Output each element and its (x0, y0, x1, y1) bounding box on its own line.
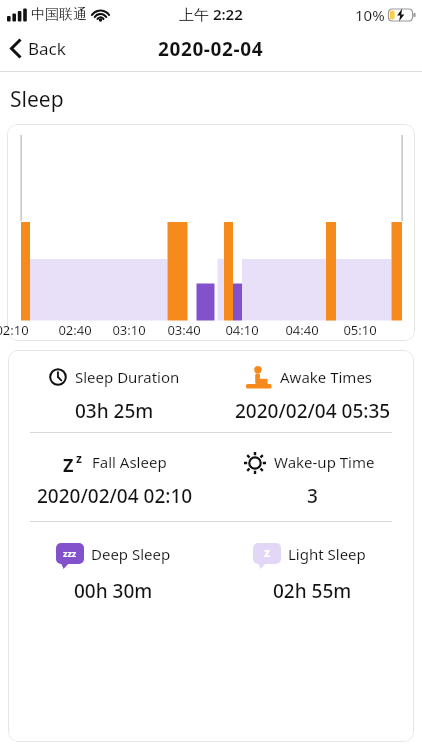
staticText: Light Sleep (288, 544, 366, 564)
button[interactable]: Sleep Duration (8, 366, 211, 388)
button[interactable]: 2020/02/04 05:35 (211, 398, 414, 420)
staticText: Awake Times (280, 367, 373, 387)
staticText: Deep Sleep (91, 544, 171, 564)
staticText: 04:40 (280, 321, 324, 339)
button[interactable]: 03h 25m (8, 398, 211, 420)
button[interactable]: 00h 30m (8, 578, 211, 600)
staticText: 03h 25m (75, 398, 154, 420)
staticText: Fall Asleep (92, 452, 167, 472)
button[interactable]: Z (8, 451, 211, 473)
staticText: z (264, 544, 270, 560)
staticText: Sleep (10, 85, 64, 114)
staticText: 上午 2:22 (179, 4, 243, 24)
staticText: 04:10 (220, 321, 264, 339)
staticText: 02:40 (53, 321, 97, 339)
button[interactable]: 2020/02/04 02:10 (8, 483, 211, 505)
staticText: 05:10 (338, 321, 382, 339)
button[interactable]: Awake Times (211, 366, 414, 388)
button[interactable]: zzz (8, 543, 211, 565)
staticText: Wake-up Time (274, 452, 375, 472)
staticText: Sleep Duration (75, 367, 180, 387)
staticText: 3 (307, 483, 318, 505)
staticText: 2020/02/04 05:35 (235, 398, 391, 420)
staticText: 2020-02-04 (158, 36, 264, 62)
button[interactable]: Wake-up Time (211, 451, 414, 473)
staticText: z (76, 450, 82, 466)
staticText: 02:10 (0, 321, 34, 339)
button[interactable]: Back (9, 37, 66, 60)
staticText: zzz (63, 547, 77, 559)
staticText: 03:40 (162, 321, 206, 339)
staticText: Z (63, 453, 74, 473)
staticText: 00h 30m (74, 578, 153, 600)
staticText: 02h 55m (273, 578, 352, 600)
button[interactable]: 02h 55m (211, 578, 414, 600)
button[interactable]: 3 (211, 483, 414, 505)
staticText: Back (28, 37, 66, 60)
staticText: 2020/02/04 02:10 (37, 483, 193, 505)
staticText: 10% (355, 5, 385, 25)
staticText: 中国联通 (31, 6, 87, 24)
button[interactable]: z (211, 543, 414, 565)
staticText: 03:10 (107, 321, 151, 339)
